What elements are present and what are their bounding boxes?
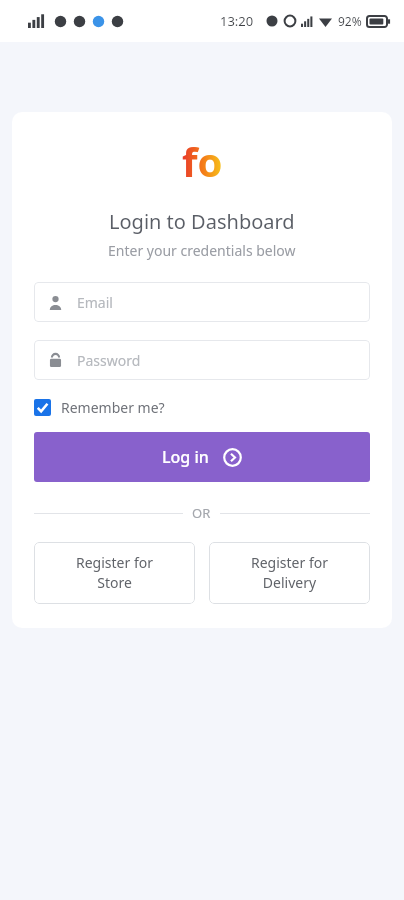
staticText: Email bbox=[77, 293, 113, 312]
staticText: 92% bbox=[338, 13, 362, 29]
staticText: Log in bbox=[162, 446, 209, 468]
button[interactable]: Log in bbox=[34, 432, 370, 482]
button[interactable]: Remember me? bbox=[34, 398, 370, 417]
staticText: 13:20 bbox=[220, 12, 254, 30]
staticText: OR bbox=[192, 504, 211, 522]
button[interactable]: Password bbox=[34, 340, 370, 380]
button[interactable]: Register for Store bbox=[34, 542, 195, 604]
staticText: Remember me? bbox=[61, 398, 165, 417]
staticText: Register for Delivery bbox=[251, 553, 328, 593]
staticText: Login to Dashboard bbox=[109, 208, 295, 235]
staticText: fo bbox=[182, 134, 223, 188]
staticText: go bbox=[177, 172, 228, 176]
button[interactable]: Register for Delivery bbox=[209, 542, 370, 604]
staticText: Register for Store bbox=[76, 553, 153, 593]
staticText: Password bbox=[77, 351, 141, 370]
staticText: Enter your credentials below bbox=[108, 241, 296, 260]
button[interactable]: Email bbox=[34, 282, 370, 322]
